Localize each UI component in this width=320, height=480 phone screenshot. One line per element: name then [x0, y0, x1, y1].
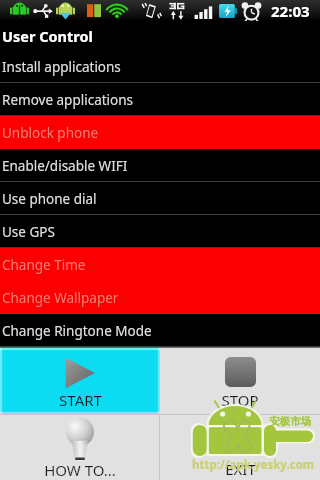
staticText: Enable/disable WIFI: [2, 157, 128, 175]
staticText: Change Wallpaper: [2, 289, 119, 307]
button[interactable]: EXIT: [160, 415, 320, 480]
button[interactable]: Change Wallpaper: [0, 281, 320, 314]
button[interactable]: Install applications: [0, 50, 320, 83]
button[interactable]: Use GPS: [0, 215, 320, 248]
button[interactable]: Remove applications: [0, 83, 320, 116]
button[interactable]: HOW TO...: [0, 415, 159, 480]
button[interactable]: Change Time: [0, 248, 320, 281]
staticText: Remove applications: [2, 91, 134, 109]
button[interactable]: Use phone dial: [0, 182, 320, 215]
button[interactable]: Enable/disable WIFI: [0, 149, 320, 182]
button[interactable]: Change Ringtone Mode: [0, 314, 320, 347]
staticText: STOP: [221, 390, 259, 410]
staticText: 安极市场: [269, 415, 311, 428]
staticText: Install applications: [2, 58, 121, 76]
staticText: Change Ringtone Mode: [2, 322, 152, 340]
staticText: http://apk.yesky.com: [192, 457, 315, 473]
button[interactable]: START: [0, 348, 160, 414]
staticText: Unblock phone: [2, 124, 99, 142]
staticText: Use phone dial: [2, 190, 97, 208]
staticText: Change Time: [2, 256, 86, 274]
staticText: START: [59, 390, 102, 410]
button[interactable]: Unblock phone: [0, 116, 320, 149]
staticText: 22:03: [271, 1, 310, 21]
button[interactable]: STOP: [160, 348, 320, 414]
staticText: User Control: [2, 26, 93, 46]
staticText: HOW TO...: [44, 460, 116, 480]
staticText: EXIT: [225, 459, 256, 479]
staticText: Use GPS: [2, 223, 55, 241]
